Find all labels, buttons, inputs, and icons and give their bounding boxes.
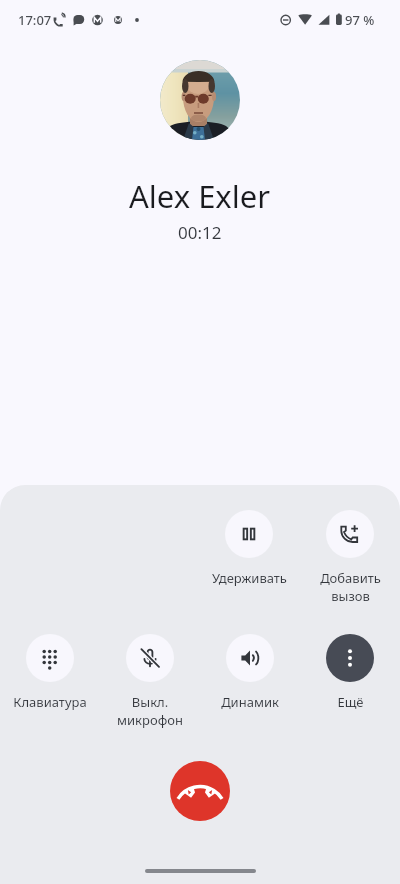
button[interactable]: Keypad: [26, 634, 74, 682]
staticText: Динамик: [221, 693, 279, 711]
staticText: 97 %: [345, 11, 375, 29]
staticText: Добавить вызов: [320, 569, 381, 605]
button[interactable]: End call: [170, 761, 230, 821]
staticText: 17:07: [18, 11, 52, 29]
staticText: Выкл. микрофон: [117, 693, 183, 729]
staticText: 00:12: [178, 221, 222, 244]
staticText: Удерживать: [212, 569, 287, 587]
staticText: Ещё: [337, 693, 364, 711]
button[interactable]: Speaker: [226, 634, 274, 682]
button[interactable]: Mute microphone: [126, 634, 174, 682]
button[interactable]: More: [326, 634, 374, 682]
button[interactable]: Add call: [326, 510, 374, 558]
button[interactable]: Hold: [225, 510, 273, 558]
staticText: Клавиатура: [13, 693, 87, 711]
staticText: Alex Exler: [129, 175, 271, 217]
